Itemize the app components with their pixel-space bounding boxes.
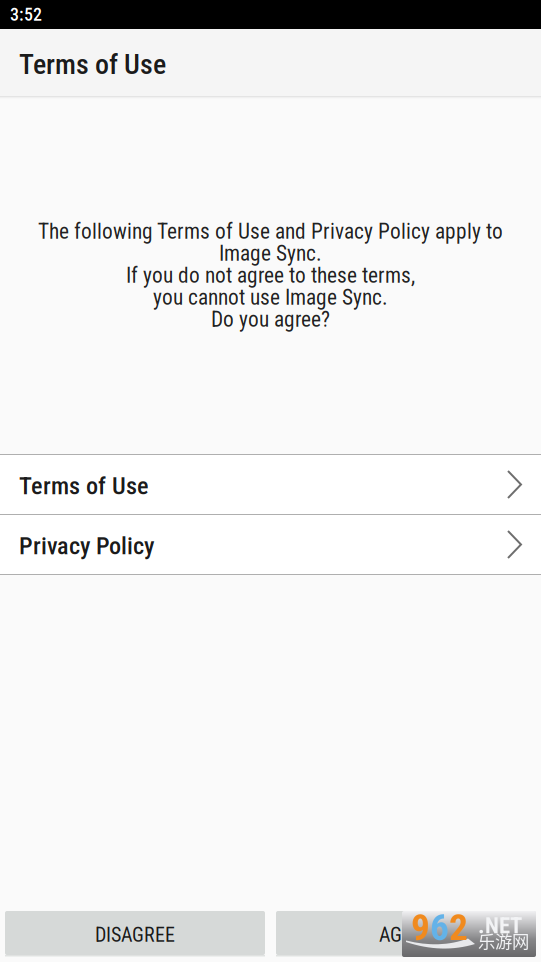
staticText: Do you agree? <box>211 307 330 332</box>
staticText: 9 <box>411 906 430 949</box>
button[interactable]: Privacy Policy <box>0 515 541 574</box>
staticText: Privacy Policy <box>19 532 154 560</box>
staticText: DISAGREE <box>95 923 175 947</box>
staticText: you cannot use Image Sync. <box>153 285 388 310</box>
staticText: Image Sync. <box>219 241 322 266</box>
staticText: AGREE <box>379 923 433 947</box>
staticText: 乐游网 <box>478 928 529 953</box>
staticText: Terms of Use <box>19 48 166 81</box>
button[interactable]: DISAGREE <box>5 911 265 957</box>
staticText: The following Terms of Use and Privacy P… <box>38 219 503 244</box>
staticText: .NET <box>478 912 522 939</box>
staticText: 2 <box>449 906 468 949</box>
button[interactable]: AGREE <box>276 911 536 957</box>
button[interactable]: Terms of Use <box>0 455 541 514</box>
staticText: If you do not agree to these terms, <box>126 263 415 288</box>
staticText: 6 <box>430 906 449 949</box>
staticText: Terms of Use <box>19 472 149 500</box>
staticText: 3:52 <box>10 4 42 25</box>
